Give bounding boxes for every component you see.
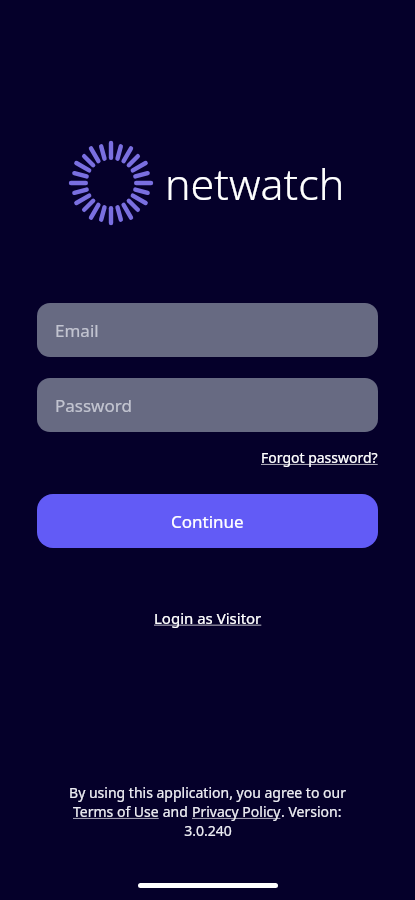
staticText: Privacy Policy	[192, 802, 281, 821]
staticText: Terms of Use	[73, 802, 159, 821]
button[interactable]: Forgot password?	[261, 445, 378, 470]
staticText: Forgot password?	[261, 448, 378, 467]
button[interactable]: Login as Visitor	[144, 603, 272, 633]
staticText: Login as Visitor	[154, 608, 262, 628]
staticText: Password	[55, 394, 132, 417]
staticText: 3.0.240	[184, 821, 232, 840]
staticText: netwatch	[165, 154, 345, 213]
button[interactable]: Continue	[37, 494, 378, 548]
other: Netwatch logo	[71, 143, 151, 223]
staticText: . Version:	[281, 802, 342, 821]
staticText: By using this application, you agree to …	[69, 783, 346, 802]
button[interactable]: Password	[37, 378, 378, 432]
button[interactable]: Email	[37, 303, 378, 357]
button[interactable]: Terms of Use	[73, 802, 159, 821]
staticText: and	[159, 802, 192, 821]
staticText: Email	[55, 319, 99, 342]
button[interactable]: Privacy Policy	[192, 802, 281, 821]
staticText: Continue	[171, 510, 244, 533]
